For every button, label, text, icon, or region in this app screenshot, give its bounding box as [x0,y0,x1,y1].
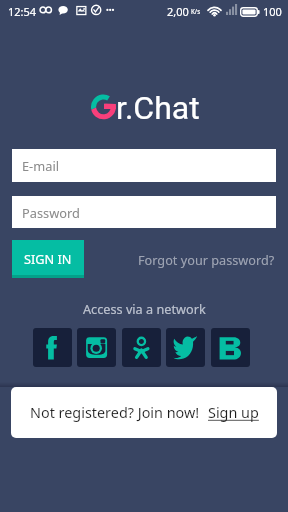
button[interactable]: Facebook [33,328,72,367]
button[interactable]: SIGN IN [12,240,84,278]
staticText: r.Chat [116,89,200,127]
button[interactable]: Twitter [166,328,205,367]
staticText: Access via a network [83,300,206,317]
staticText: SIGN IN [24,250,72,267]
button[interactable]: Forgot your password? [138,251,275,268]
staticText: 2,00 [167,4,189,19]
button[interactable]: E-mail [12,149,276,182]
staticText: 100 [263,4,282,19]
button[interactable]: Odnoklassniki [122,328,161,367]
button[interactable]: VKontakte [211,328,250,367]
staticText: Not registered? Join now! [30,403,200,423]
staticText: Password [22,204,80,221]
staticText: 12:54 [8,4,37,19]
button[interactable]: Sign up [208,403,259,423]
staticText: E-mail [22,157,59,174]
button[interactable]: Password [12,196,276,228]
staticText: K/s [191,7,201,15]
button[interactable]: Instagram [77,328,116,367]
